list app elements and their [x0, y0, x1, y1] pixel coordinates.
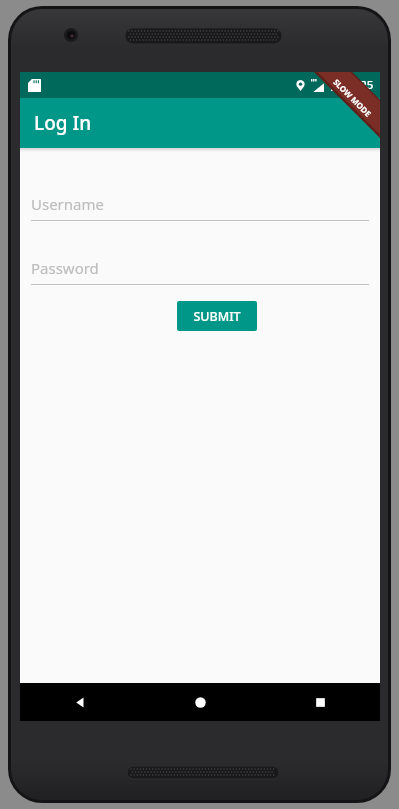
button[interactable]: Password [31, 258, 369, 285]
button[interactable]: SUBMIT [177, 301, 257, 331]
staticText: SLOW MODE [331, 76, 374, 119]
staticText: Log In [34, 110, 92, 136]
button[interactable]: Back [20, 683, 140, 721]
staticText: SUBMIT [193, 308, 241, 325]
staticText: Username [31, 194, 104, 214]
staticText: Password [31, 258, 99, 278]
button[interactable]: Home [140, 683, 260, 721]
button[interactable]: Recent apps [260, 683, 380, 721]
button[interactable]: Username [31, 194, 369, 221]
staticText: 12:25 [344, 77, 374, 93]
